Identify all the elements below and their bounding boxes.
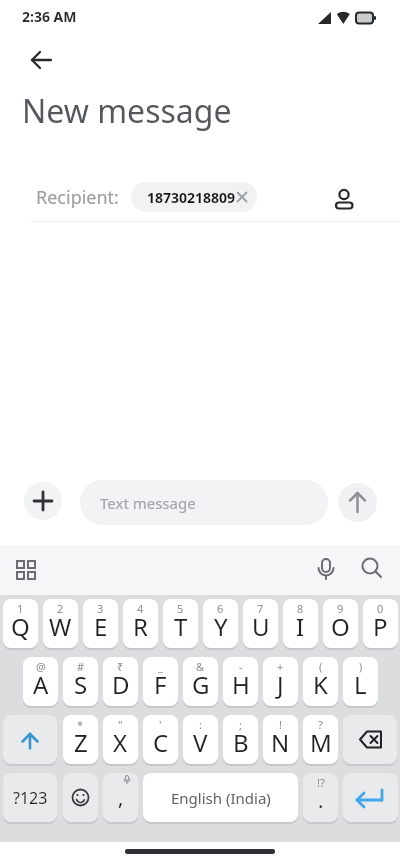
staticText: ;	[239, 717, 242, 732]
staticText: @	[36, 659, 46, 674]
button[interactable]: +	[263, 657, 298, 706]
button[interactable]: 6	[203, 599, 238, 648]
button[interactable]	[338, 483, 377, 522]
staticText: 0	[377, 601, 384, 616]
staticText: English (India)	[171, 788, 271, 808]
staticText: N	[271, 726, 290, 759]
staticText: :	[199, 717, 202, 732]
button[interactable]: 0	[363, 599, 398, 648]
staticText: E	[94, 610, 108, 643]
staticText: U	[252, 610, 270, 643]
staticText: H	[232, 668, 250, 701]
button[interactable]: -	[223, 657, 258, 706]
button[interactable]: (	[303, 657, 338, 706]
staticText: *	[77, 717, 84, 732]
staticText: L	[354, 668, 367, 701]
button[interactable]	[309, 553, 343, 587]
button[interactable]	[343, 773, 398, 822]
staticText: .	[318, 787, 324, 814]
staticText: B	[233, 726, 249, 759]
staticText: C	[153, 726, 169, 759]
button[interactable]	[328, 182, 360, 214]
button[interactable]	[63, 773, 98, 822]
staticText: S	[74, 668, 88, 701]
button[interactable]: ₹	[103, 657, 138, 706]
staticText: R	[133, 610, 148, 643]
staticText: Y	[214, 610, 228, 643]
button[interactable]: 9	[323, 599, 358, 648]
button[interactable]: *	[63, 715, 98, 764]
button[interactable]: ;	[223, 715, 258, 764]
button[interactable]: ,	[103, 773, 138, 822]
button[interactable]: _	[143, 657, 178, 706]
staticText: 9	[337, 601, 344, 616]
button[interactable]	[3, 715, 57, 764]
button[interactable]: &	[183, 657, 218, 706]
button[interactable]: ?	[303, 715, 338, 764]
button[interactable]: 18730218809	[131, 182, 257, 212]
button[interactable]: 7	[243, 599, 278, 648]
staticText: G	[192, 668, 210, 701]
staticText: P	[373, 610, 388, 643]
button[interactable]: 3	[83, 599, 118, 648]
staticText: "	[118, 717, 123, 732]
button[interactable]: )	[343, 657, 378, 706]
staticText: I	[296, 610, 305, 643]
button[interactable]	[355, 553, 389, 587]
staticText: !?	[317, 775, 325, 790]
button[interactable]: #	[63, 657, 98, 706]
staticText: 2:36 AM	[22, 7, 77, 26]
button[interactable]: English (India)	[143, 773, 298, 822]
staticText: 5	[177, 601, 184, 616]
staticText: '	[159, 717, 162, 732]
button[interactable]: 2	[43, 599, 78, 648]
staticText: #	[77, 659, 85, 674]
staticText: F	[154, 668, 167, 701]
button[interactable]: Text message	[80, 480, 328, 525]
staticText: ,	[118, 784, 124, 811]
staticText: 7	[257, 601, 264, 616]
staticText: 4	[137, 601, 144, 616]
staticText: ?123	[13, 787, 48, 809]
button[interactable]	[22, 44, 60, 76]
staticText: !	[279, 717, 282, 732]
staticText: V	[193, 726, 208, 759]
button[interactable]: :	[183, 715, 218, 764]
staticText: Text message	[100, 493, 196, 513]
button[interactable]: "	[103, 715, 138, 764]
staticText: )	[359, 659, 363, 674]
staticText: 2	[57, 601, 64, 616]
button[interactable]: ?123	[3, 773, 57, 822]
staticText: J	[277, 668, 284, 701]
staticText: Z	[74, 726, 88, 759]
staticText: _	[158, 659, 163, 674]
button[interactable]: !?	[303, 773, 338, 822]
button[interactable]	[9, 553, 43, 587]
staticText: ?	[318, 717, 323, 732]
staticText: (	[319, 659, 323, 674]
staticText: -	[239, 659, 243, 674]
staticText: K	[313, 668, 328, 701]
staticText: &	[196, 659, 205, 674]
staticText: Recipient:	[36, 185, 119, 210]
staticText: 8	[297, 601, 304, 616]
button[interactable]	[343, 715, 397, 764]
button[interactable]: 4	[123, 599, 158, 648]
staticText: M	[310, 726, 332, 759]
button[interactable]	[24, 482, 62, 520]
staticText: Q	[11, 610, 30, 643]
staticText: X	[113, 726, 128, 759]
button[interactable]: 1	[3, 599, 38, 648]
staticText: 18730218809	[147, 188, 236, 207]
staticText: 3	[97, 601, 104, 616]
staticText: 1	[17, 601, 24, 616]
button[interactable]: 8	[283, 599, 318, 648]
button[interactable]: 5	[163, 599, 198, 648]
staticText: W	[49, 610, 72, 643]
staticText: 6	[217, 601, 224, 616]
button[interactable]: @	[23, 657, 58, 706]
staticText: T	[174, 610, 188, 643]
button[interactable]: !	[263, 715, 298, 764]
staticText: D	[112, 668, 130, 701]
button[interactable]: '	[143, 715, 178, 764]
